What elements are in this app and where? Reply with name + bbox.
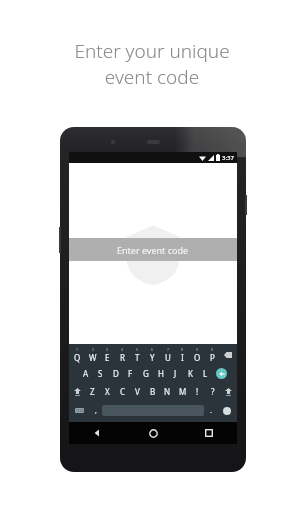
staticText: Y (150, 352, 155, 363)
button[interactable]: 4 (115, 346, 130, 364)
staticText: C (120, 386, 126, 397)
button[interactable]: . (204, 401, 217, 420)
staticText: I (181, 352, 184, 363)
button[interactable]: A (78, 364, 93, 382)
staticText: 7 (167, 347, 170, 352)
staticText: P (210, 352, 215, 363)
staticText: 0 (211, 347, 214, 352)
staticText: Q (74, 352, 81, 363)
staticText: ?123 (76, 408, 84, 413)
staticText: 8 (181, 347, 184, 352)
button[interactable]: N (160, 382, 175, 401)
button[interactable]: 9 (190, 346, 205, 364)
button[interactable]: 6 (145, 346, 160, 364)
staticText: 6 (151, 347, 154, 352)
staticText: 3:37 (222, 154, 234, 162)
button[interactable]: S (93, 364, 108, 382)
button[interactable]: 8 (175, 346, 190, 364)
button[interactable]: 3 (100, 346, 115, 364)
staticText: 9 (196, 347, 199, 352)
button[interactable]: , (89, 401, 102, 420)
staticText: . (210, 406, 212, 416)
staticText: D (113, 368, 119, 379)
staticText: R (120, 352, 125, 363)
staticText: 2 (92, 347, 95, 352)
staticText: M (179, 386, 187, 397)
button[interactable]: 2 (85, 346, 100, 364)
button[interactable]: Back (69, 422, 125, 444)
staticText: K (188, 368, 193, 379)
button[interactable]: B (145, 382, 160, 401)
button[interactable]: Enter event code (69, 238, 237, 261)
staticText: V (135, 386, 140, 397)
staticText: X (105, 386, 110, 397)
button[interactable]: D (108, 364, 123, 382)
button[interactable]: Voice input (217, 401, 236, 420)
button[interactable]: ! (190, 382, 205, 401)
button[interactable]: Home (125, 422, 181, 444)
button[interactable]: K (183, 364, 198, 382)
button[interactable]: H (153, 364, 168, 382)
button[interactable]: G (138, 364, 153, 382)
button[interactable]: ? (205, 382, 220, 401)
button[interactable]: 7 (160, 346, 175, 364)
button[interactable]: Shift (70, 382, 85, 401)
staticText: F (128, 368, 133, 379)
button[interactable]: X (100, 382, 115, 401)
staticText: A (83, 368, 89, 379)
staticText: ! (196, 386, 199, 397)
button[interactable]: M (175, 382, 190, 401)
staticText: ? (211, 386, 215, 397)
button[interactable]: V (130, 382, 145, 401)
staticText: 5 (136, 347, 139, 352)
staticText: Enter your unique event code (74, 38, 230, 90)
button[interactable]: 0 (205, 346, 220, 364)
staticText: Enter event code (117, 244, 189, 256)
staticText: Z (90, 386, 95, 397)
button[interactable]: ?123 (70, 401, 89, 420)
button[interactable]: 1 (70, 346, 85, 364)
staticText: S (98, 368, 103, 379)
staticText: J (174, 368, 177, 379)
staticText: U (165, 352, 171, 363)
staticText: 1 (76, 347, 79, 352)
staticText: , (95, 406, 97, 416)
staticText: B (150, 386, 156, 397)
button[interactable]: C (115, 382, 130, 401)
button[interactable]: Backspace (220, 346, 236, 364)
button[interactable]: Shift (220, 382, 236, 401)
button[interactable]: J (168, 364, 183, 382)
staticText: T (135, 352, 140, 363)
staticText: 3 (106, 347, 109, 352)
staticText: E (105, 352, 110, 363)
button[interactable]: Recents (181, 422, 237, 444)
staticText: W (89, 352, 97, 363)
staticText: H (158, 368, 164, 379)
staticText: G (143, 368, 149, 379)
button[interactable]: Z (85, 382, 100, 401)
staticText: N (164, 386, 171, 397)
button[interactable]: F (123, 364, 138, 382)
staticText: 4 (121, 347, 124, 352)
button[interactable]: L (198, 364, 213, 382)
button[interactable]: Enter (213, 364, 230, 382)
staticText: L (203, 368, 208, 379)
staticText: O (194, 352, 201, 363)
button[interactable]: 5 (130, 346, 145, 364)
